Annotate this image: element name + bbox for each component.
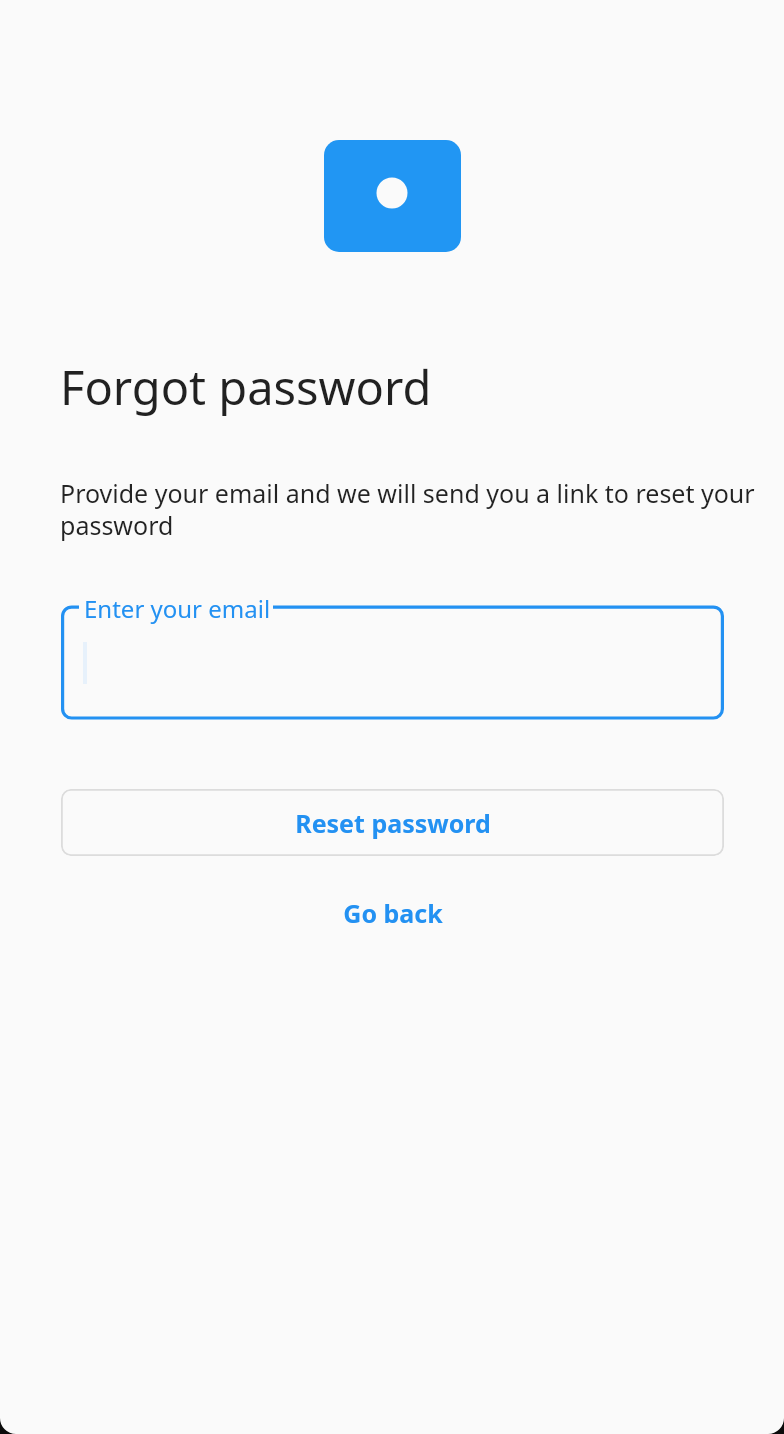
staticText: Enter your email bbox=[84, 592, 271, 625]
staticText: Reset password bbox=[295, 806, 491, 840]
staticText: Forgot password bbox=[60, 355, 432, 419]
staticText: Provide your email and we will send you … bbox=[60, 476, 784, 542]
staticText: Go back bbox=[343, 896, 443, 930]
button[interactable]: Reset password bbox=[61, 789, 724, 856]
button[interactable]: Go back bbox=[61, 884, 724, 942]
button[interactable]: Enter your email bbox=[61, 604, 724, 720]
